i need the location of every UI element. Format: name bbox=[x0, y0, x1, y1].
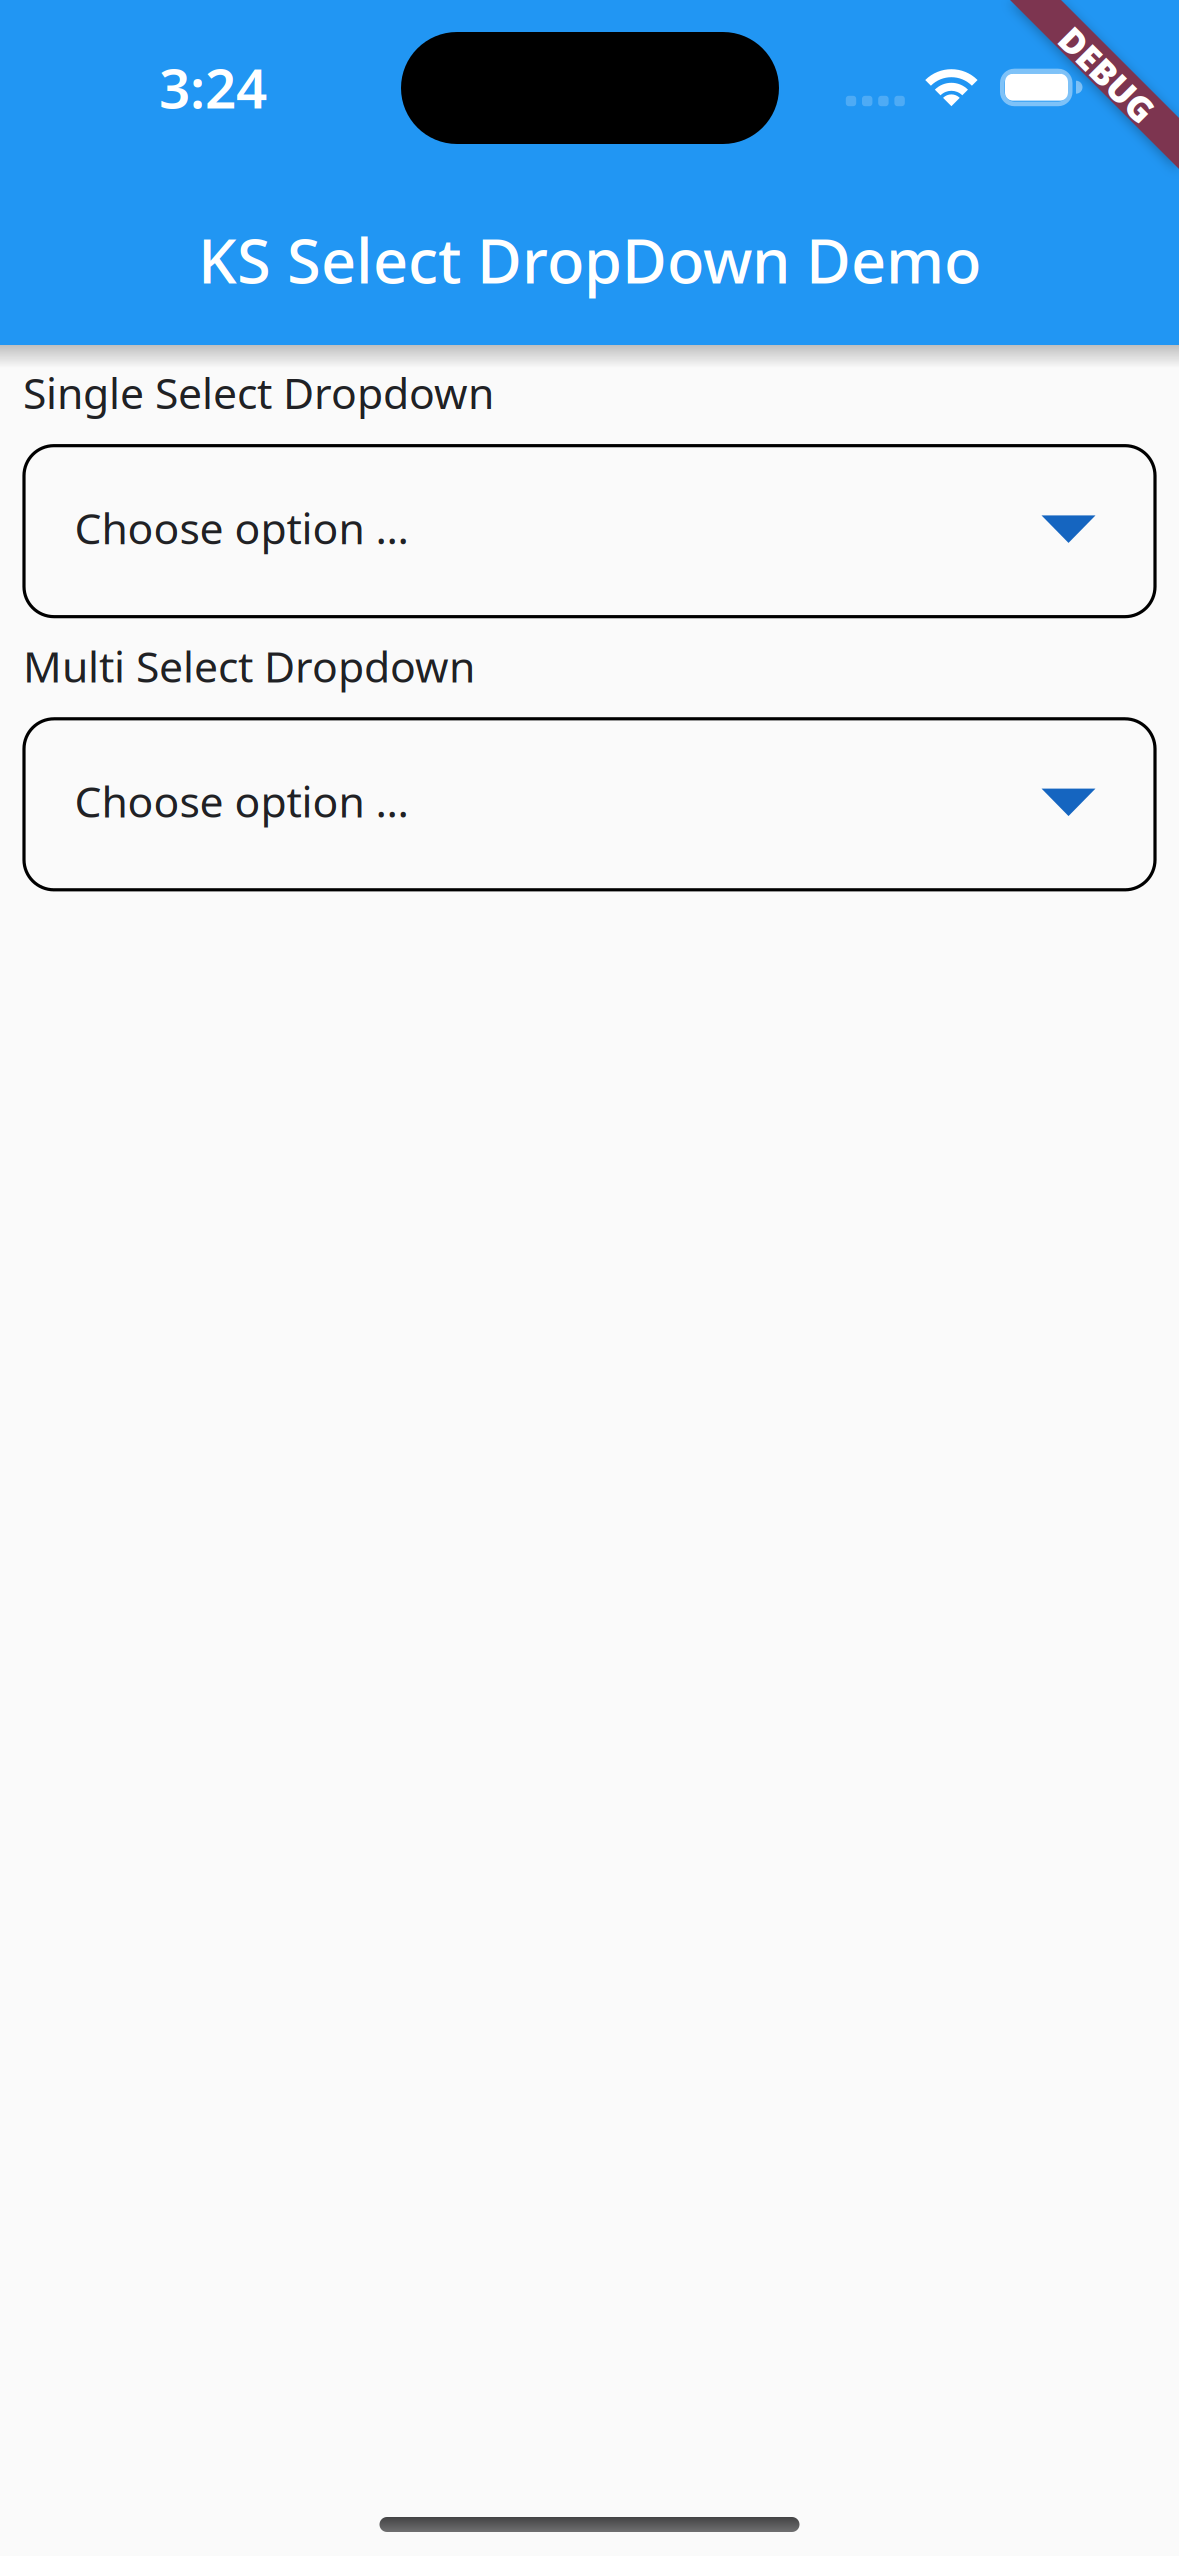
button[interactable]: Choose option ... bbox=[24, 446, 1155, 617]
staticText: Multi Select Dropdown bbox=[23, 638, 475, 694]
staticText: Single Select Dropdown bbox=[23, 364, 494, 421]
staticText: KS Select DropDown Demo bbox=[198, 219, 981, 300]
button[interactable]: Choose option ... bbox=[24, 719, 1155, 890]
staticText: Choose option ... bbox=[75, 499, 409, 556]
staticText: DEBUG bbox=[1048, 52, 1167, 98]
staticText: 3:24 bbox=[159, 51, 267, 124]
staticText: Choose option ... bbox=[75, 772, 409, 829]
